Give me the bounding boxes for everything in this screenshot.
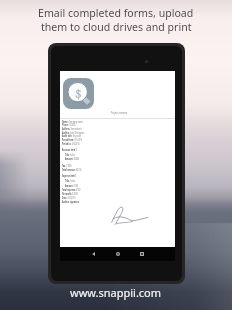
staticText: Key audit <box>72 133 81 138</box>
staticText: Tax: <box>62 163 66 168</box>
staticText: Auditor signature: <box>62 199 79 204</box>
staticText: 3/1/2016 <box>74 137 82 142</box>
staticText: Company name <box>68 119 83 124</box>
button[interactable]: App logo <box>63 78 94 109</box>
staticText: Project overview <box>111 110 127 115</box>
staticText: Net profit: <box>62 191 72 196</box>
staticText: Amount: <box>65 183 73 188</box>
staticText: Auditor: <box>62 130 70 135</box>
staticText: Period to: <box>62 141 71 146</box>
staticText: John Thompson <box>70 130 84 135</box>
staticText: Title: <box>65 178 70 183</box>
button[interactable]: Recent apps <box>137 249 147 259</box>
staticText: Amount: <box>65 156 73 161</box>
staticText: Audit title: <box>62 133 72 138</box>
button[interactable]: Back <box>88 249 98 259</box>
staticText: Email completed forms, upload <box>38 6 194 20</box>
button[interactable]: Home <box>113 249 123 259</box>
staticText: them to cloud drives and print <box>41 20 192 34</box>
staticText: Expense item 1 <box>62 173 76 178</box>
staticText: Title: <box>65 152 70 157</box>
staticText: Some street <box>70 126 81 131</box>
staticText: 123456 <box>69 122 76 127</box>
staticText: $140 <box>76 187 80 192</box>
staticText: $2000 <box>73 156 79 161</box>
staticText: Name: <box>62 119 68 124</box>
staticText: Date: <box>62 195 67 200</box>
staticText: $2000 <box>72 191 78 196</box>
staticText: Address: <box>62 126 70 131</box>
staticText: $140 <box>73 183 78 188</box>
staticText: Sales <box>70 152 75 157</box>
staticText: Taxes <box>70 178 75 183</box>
staticText: $ <box>75 86 82 102</box>
staticText: 7.00% <box>66 163 72 168</box>
staticText: Revenue item 1 <box>62 147 77 152</box>
staticText: 3/3/2016 <box>71 141 80 146</box>
staticText: 3/3/2016 <box>67 195 75 200</box>
staticText: Phone: <box>62 122 69 127</box>
staticText: Period from: <box>62 137 74 142</box>
staticText: Total expense: <box>62 187 76 192</box>
staticText: Total revenue: <box>62 167 75 172</box>
staticText: $2140 <box>75 167 81 172</box>
staticText: www.snappii.com <box>70 285 162 300</box>
